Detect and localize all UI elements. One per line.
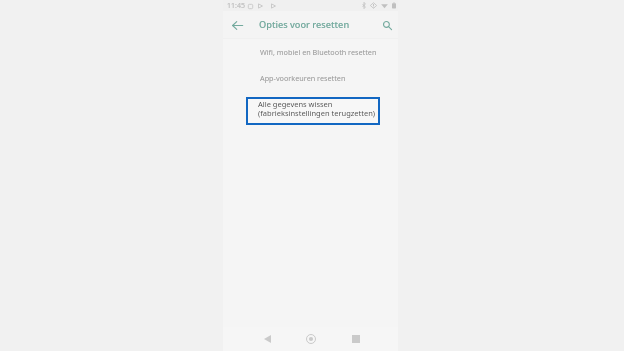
button[interactable]: Alle gegevens wissen (fabrieksinstelling… — [246, 97, 380, 125]
button[interactable]: Home — [300, 330, 322, 348]
button[interactable]: Terug — [229, 17, 246, 33]
button[interactable]: Zoeken — [379, 17, 396, 33]
staticText: 11:45 — [227, 1, 245, 11]
button[interactable]: App-voorkeuren resetten — [223, 65, 398, 91]
staticText: Wifi, mobiel en Bluetooth resetten — [260, 47, 377, 57]
staticText: App-voorkeuren resetten — [260, 73, 346, 83]
button[interactable]: Wifi, mobiel en Bluetooth resetten — [223, 39, 398, 65]
staticText: Alle gegevens wissen (fabrieksinstelling… — [258, 99, 376, 118]
button[interactable]: Terug — [256, 330, 278, 348]
staticText: Opties voor resetten — [259, 18, 350, 31]
button[interactable]: Recente apps — [345, 330, 367, 348]
